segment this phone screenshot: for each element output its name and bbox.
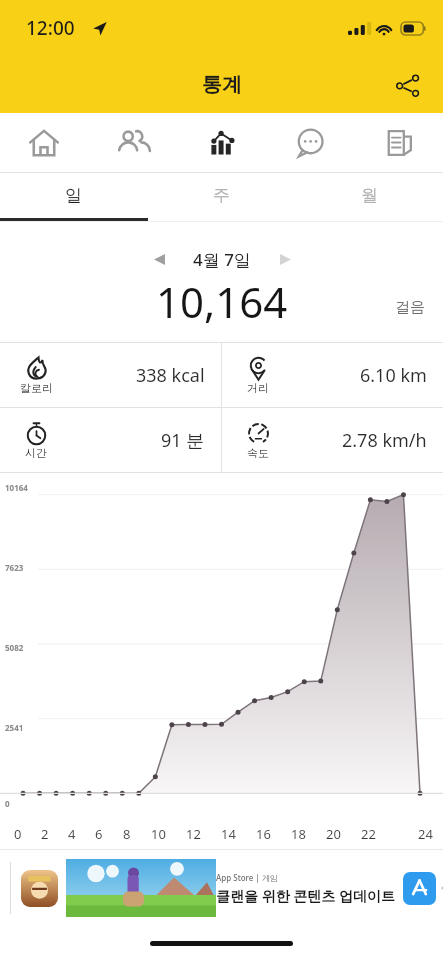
- button[interactable]: Feed: [354, 113, 443, 172]
- button[interactable]: 거리: [222, 343, 443, 407]
- staticText: 칼로리: [20, 381, 53, 395]
- button[interactable]: Friends: [88, 113, 176, 172]
- staticText: 시간: [25, 446, 47, 460]
- staticText: 12: [186, 825, 201, 843]
- staticText: 6.10 km: [360, 363, 427, 388]
- button[interactable]: 주: [147, 173, 295, 218]
- button[interactable]: App Store | 게임: [0, 850, 443, 926]
- staticText: 24: [418, 825, 433, 843]
- staticText: 8: [123, 825, 131, 843]
- staticText: 4: [68, 825, 76, 843]
- staticText: 걸음: [395, 298, 425, 317]
- staticText: 91 분: [161, 428, 205, 453]
- button[interactable]: 칼로리: [0, 343, 221, 407]
- staticText: 20: [326, 825, 341, 843]
- staticText: 거리: [247, 381, 269, 395]
- staticText: 12:00: [26, 15, 75, 41]
- button[interactable]: 속도: [222, 408, 443, 472]
- staticText: 0: [14, 825, 22, 843]
- staticText: 일: [65, 185, 82, 206]
- staticText: 4월 7일: [193, 248, 251, 271]
- staticText: 10164: [5, 482, 28, 493]
- button[interactable]: Previous day: [145, 246, 173, 272]
- staticText: 월: [361, 185, 378, 206]
- staticText: 2.78 km/h: [342, 428, 427, 453]
- button[interactable]: 시간: [0, 408, 221, 472]
- staticText: 338 kcal: [136, 363, 205, 388]
- button[interactable]: 일: [0, 173, 147, 218]
- button[interactable]: 월: [295, 173, 443, 218]
- staticText: 주: [213, 185, 230, 206]
- button[interactable]: Home: [0, 113, 88, 172]
- button[interactable]: Next day: [271, 246, 299, 272]
- staticText: 2541: [5, 722, 24, 733]
- staticText: 7623: [5, 562, 24, 573]
- staticText: 18: [291, 825, 306, 843]
- staticText: 14: [221, 825, 236, 843]
- staticText: App Store | 게임: [216, 872, 278, 883]
- button[interactable]: Chat: [265, 113, 354, 172]
- staticText: 0: [5, 798, 10, 809]
- staticText: 6: [95, 825, 103, 843]
- staticText: 22: [361, 825, 376, 843]
- staticText: 10,164: [156, 273, 288, 330]
- staticText: 속도: [247, 446, 269, 460]
- staticText: 클랜을 위한 콘텐츠 업데이트: [216, 886, 395, 905]
- staticText: 10: [151, 825, 166, 843]
- staticText: 5082: [5, 642, 24, 653]
- staticText: 통계: [202, 72, 242, 97]
- staticText: 2: [41, 825, 49, 843]
- staticText: 16: [256, 825, 271, 843]
- button[interactable]: Share: [383, 61, 431, 109]
- button[interactable]: Statistics: [176, 113, 265, 172]
